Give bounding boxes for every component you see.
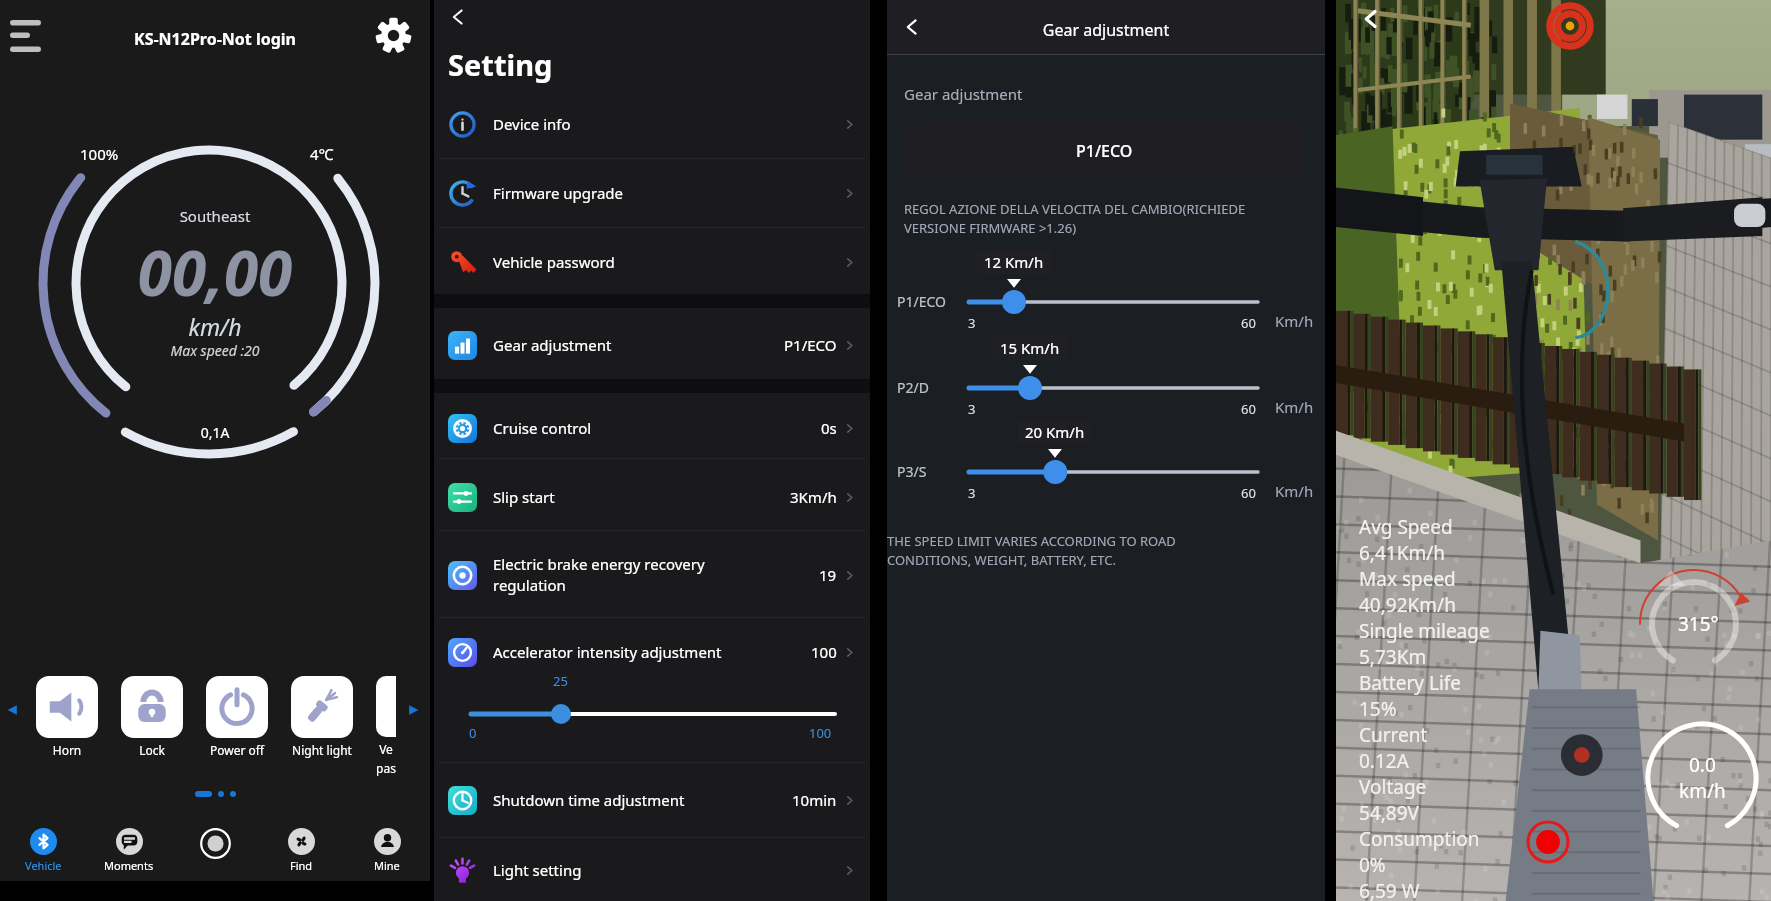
staticText: Cruise control — [493, 418, 821, 438]
button[interactable]: Accelerator intensity adjustment — [434, 624, 870, 680]
staticText: 3Km/h — [790, 487, 837, 507]
button[interactable]: Slip start — [434, 469, 870, 525]
button[interactable]: Shutdown time adjustment — [434, 772, 870, 828]
button[interactable]: Back — [443, 2, 473, 32]
staticText: 20 Km/h — [1025, 422, 1085, 442]
staticText: Battery Life — [1359, 670, 1462, 696]
staticText: KS-N12Pro-Not login — [0, 28, 430, 50]
staticText: Vehicle — [25, 858, 62, 873]
staticText: Km/h — [1275, 481, 1314, 501]
staticText: 54,89V — [1359, 800, 1419, 826]
staticText: Max speed :20 — [0, 341, 430, 360]
button[interactable]: Gear adjustment — [434, 317, 870, 373]
staticText: 12 Km/h — [984, 252, 1044, 272]
staticText: Lock — [121, 742, 183, 758]
staticText: 19 — [819, 565, 837, 585]
staticText: Night light — [291, 742, 353, 758]
staticText: 0.0 — [1689, 752, 1716, 778]
staticText: Southeast — [0, 206, 430, 226]
staticText: Setting — [448, 45, 553, 84]
staticText: Mine — [374, 858, 400, 873]
staticText: Light setting — [493, 860, 842, 880]
button[interactable]: Find — [258, 828, 344, 873]
staticText: Avg Speed — [1359, 514, 1453, 540]
staticText: 25 — [553, 672, 568, 690]
staticText: 10min — [792, 790, 837, 810]
button[interactable]: Cruise control — [434, 400, 870, 456]
button[interactable] — [36, 676, 98, 738]
staticText: P1/ECO — [784, 335, 837, 355]
button[interactable]: Light setting — [434, 842, 870, 898]
staticText: Voltage — [1359, 774, 1427, 800]
staticText: 315° — [1678, 611, 1719, 637]
button[interactable]: Previous — [2, 700, 22, 720]
button[interactable] — [376, 676, 396, 737]
staticText: Electric brake energy recovery regulatio… — [493, 554, 819, 596]
button[interactable] — [291, 676, 353, 738]
button[interactable]: Vehicle — [0, 828, 86, 873]
staticText: Horn — [36, 742, 98, 758]
staticText: 40,92Km/h — [1359, 592, 1456, 618]
staticText: Slip start — [493, 487, 790, 507]
button[interactable]: Next — [404, 700, 424, 720]
staticText: Gear adjustment — [493, 335, 784, 355]
staticText: Power off — [206, 742, 268, 758]
staticText: 00,00 — [0, 230, 430, 314]
button[interactable]: Back — [1354, 2, 1388, 36]
staticText: Gear adjustment — [904, 84, 1023, 104]
button[interactable]: Settings — [375, 17, 412, 54]
staticText: 0.12A — [1359, 748, 1409, 774]
button[interactable]: Device info — [434, 96, 870, 152]
button[interactable] — [121, 676, 183, 738]
staticText: Ve pas — [376, 741, 396, 776]
button[interactable] — [206, 676, 268, 738]
staticText: 3 — [968, 400, 976, 418]
staticText: 0 — [469, 724, 477, 742]
staticText: Shutdown time adjustment — [493, 790, 792, 810]
staticText: REGOL AZIONE DELLA VELOCITA DEL CAMBIO(R… — [904, 200, 1246, 237]
staticText: 0,1A — [0, 423, 430, 442]
staticText: 6,59 W — [1359, 878, 1420, 901]
staticText: 0% — [1359, 852, 1386, 878]
staticText: P1/ECO — [897, 292, 946, 311]
staticText: P3/S — [897, 462, 927, 481]
staticText: 3 — [968, 484, 976, 502]
staticText: 60 — [1241, 484, 1256, 502]
staticText: 15 Km/h — [1000, 338, 1060, 358]
staticText: Vehicle password — [493, 252, 842, 272]
button[interactable]: Moments — [86, 828, 172, 873]
button[interactable]: Back — [897, 12, 927, 42]
button[interactable]: Vehicle password — [434, 234, 870, 290]
staticText: Device info — [493, 114, 842, 134]
staticText: 6,41Km/h — [1359, 540, 1446, 566]
staticText: Km/h — [1275, 311, 1314, 331]
staticText: km/h — [1679, 778, 1726, 804]
button[interactable]: Menu — [2, 12, 50, 60]
staticText: 0s — [821, 418, 837, 438]
staticText: 60 — [1241, 314, 1256, 332]
button[interactable]: Mine — [344, 828, 430, 873]
staticText: P1/ECO — [1076, 140, 1133, 162]
staticText: Max speed — [1359, 566, 1456, 592]
staticText: Moments — [104, 858, 154, 873]
button[interactable]: Firmware upgrade — [434, 165, 870, 221]
staticText: Find — [290, 858, 313, 873]
staticText: 15% — [1359, 696, 1397, 722]
staticText: 100 — [811, 642, 837, 662]
staticText: 3 — [968, 314, 976, 332]
button[interactable]: Electric brake energy recovery regulatio… — [434, 547, 870, 603]
button[interactable]: Record — [1526, 820, 1570, 864]
staticText: 100 — [809, 724, 832, 742]
staticText: Km/h — [1275, 397, 1314, 417]
staticText: Accelerator intensity adjustment — [493, 642, 811, 662]
button[interactable]: Record — [172, 828, 258, 859]
staticText: THE SPEED LIMIT VARIES ACCORDING TO ROAD… — [887, 532, 1176, 569]
staticText: 60 — [1241, 400, 1256, 418]
staticText: Firmware upgrade — [493, 183, 842, 203]
staticText: km/h — [0, 311, 430, 342]
staticText: Current — [1359, 722, 1428, 748]
staticText: 5,73Km — [1359, 644, 1427, 670]
staticText: Consumption — [1359, 826, 1480, 852]
staticText: Gear adjustment — [887, 19, 1325, 41]
button[interactable]: P1/ECO — [904, 122, 1304, 179]
